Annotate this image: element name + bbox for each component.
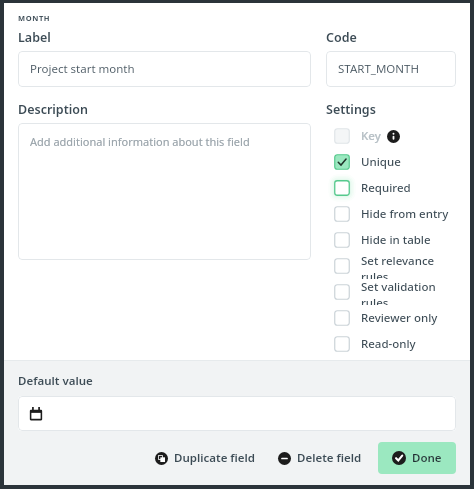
- staticText: Unique: [361, 154, 401, 170]
- staticText: Delete field: [297, 450, 362, 466]
- button[interactable]: Hide from entry: [326, 201, 456, 227]
- staticText: Default value: [18, 373, 93, 389]
- button[interactable]: Hide in table: [326, 227, 456, 253]
- button[interactable]: Information: [387, 130, 400, 143]
- staticText: Label: [18, 29, 51, 46]
- button[interactable]: Unique: [326, 149, 456, 175]
- button[interactable]: Key: [326, 123, 456, 149]
- button[interactable]: Pick date: [18, 396, 456, 431]
- button[interactable]: Done: [378, 442, 456, 474]
- staticText: MONTH: [18, 13, 51, 23]
- button[interactable]: Project start month: [18, 51, 311, 87]
- staticText: Set validation rules: [361, 279, 456, 305]
- staticText: Project start month: [30, 61, 135, 77]
- staticText: Settings: [326, 101, 376, 118]
- staticText: Set relevance rules: [361, 253, 456, 279]
- button[interactable]: Required: [326, 175, 456, 201]
- button[interactable]: Read-only: [326, 331, 456, 357]
- staticText: Hide in table: [361, 232, 431, 248]
- staticText: Hide from entry: [361, 206, 449, 222]
- button[interactable]: Set validation rules: [326, 279, 456, 305]
- button[interactable]: Delete field: [274, 442, 366, 474]
- button[interactable]: Reviewer only: [326, 305, 456, 331]
- staticText: START_MONTH: [338, 61, 419, 77]
- staticText: Done: [412, 450, 442, 466]
- button[interactable]: Set relevance rules: [326, 253, 456, 279]
- button[interactable]: START_MONTH: [326, 51, 456, 87]
- staticText: Description: [18, 101, 88, 118]
- staticText: Read-only: [361, 336, 416, 352]
- button[interactable]: Add additional information about this fi…: [18, 123, 311, 260]
- staticText: Duplicate field: [174, 450, 256, 466]
- staticText: Key: [361, 128, 381, 144]
- staticText: Required: [361, 180, 411, 196]
- staticText: Add additional information about this fi…: [30, 134, 250, 149]
- staticText: Code: [326, 29, 357, 46]
- button[interactable]: Duplicate field: [151, 442, 260, 474]
- other: Pick date: [29, 407, 43, 421]
- staticText: Reviewer only: [361, 310, 438, 326]
